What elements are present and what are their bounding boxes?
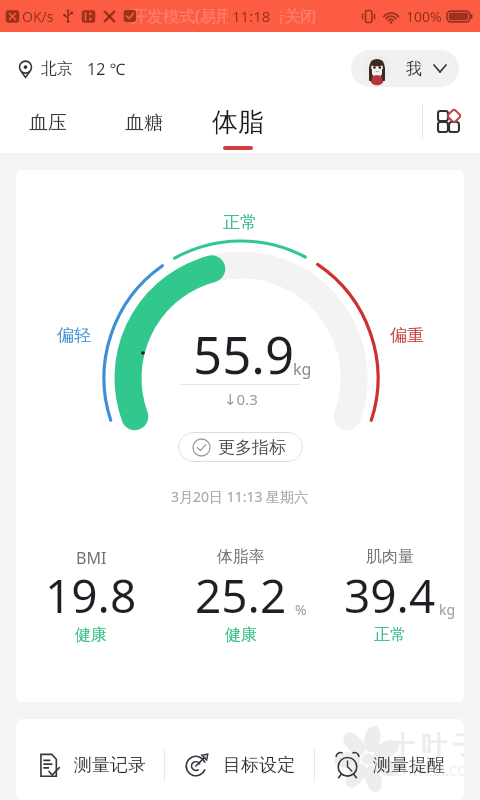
staticText: 25.2 bbox=[195, 564, 287, 627]
staticText: 更多指标 bbox=[218, 437, 286, 458]
staticText: 偏重 bbox=[390, 325, 424, 346]
staticText: 11:18 bbox=[232, 6, 271, 26]
button[interactable]: 目标设定 bbox=[165, 719, 314, 800]
staticText: 目标设定 bbox=[223, 754, 295, 777]
button[interactable]: 北京 bbox=[18, 58, 126, 80]
button[interactable]: All categories bbox=[434, 107, 462, 135]
staticText: 十 叶 子 bbox=[390, 727, 464, 761]
staticText: 血糖 bbox=[125, 111, 163, 135]
staticText: 健康 bbox=[75, 625, 107, 645]
staticText: 3月20日 11:13 星期六 bbox=[171, 487, 309, 506]
button[interactable]: 我 bbox=[351, 50, 459, 87]
staticText: 体脂 bbox=[212, 106, 264, 139]
staticText: 100% bbox=[406, 7, 442, 26]
staticText: 12 ℃ bbox=[87, 58, 126, 80]
button[interactable]: 体脂率 bbox=[166, 547, 315, 647]
staticText: 19.8 bbox=[45, 564, 137, 627]
staticText: 开发模式(易用)，点击关闭 bbox=[131, 5, 317, 27]
staticText: 健康 bbox=[225, 625, 257, 645]
staticText: BMI bbox=[76, 547, 107, 569]
staticText: ↓0.3 bbox=[224, 389, 258, 409]
staticText: OK/s bbox=[22, 7, 54, 26]
button[interactable]: 血糖 bbox=[106, 105, 182, 153]
staticText: 血压 bbox=[29, 111, 67, 135]
staticText: 肌肉量 bbox=[366, 547, 414, 567]
button[interactable]: 血压 bbox=[10, 105, 86, 153]
staticText: 偏轻 bbox=[57, 325, 91, 346]
staticText: 39.4 bbox=[344, 564, 436, 627]
staticText: kg bbox=[293, 358, 312, 380]
button[interactable]: 肌肉量 bbox=[315, 547, 464, 647]
staticText: 55.9 bbox=[193, 319, 295, 388]
staticText: 正常 bbox=[223, 212, 257, 233]
staticText: 北京 bbox=[41, 59, 73, 79]
staticText: 测量记录 bbox=[74, 754, 146, 777]
staticText: 正常 bbox=[374, 625, 406, 645]
staticText: 测量提醒 bbox=[373, 754, 445, 777]
button[interactable]: 更多指标 bbox=[178, 432, 303, 462]
button[interactable]: 测量提醒 bbox=[315, 719, 464, 800]
button[interactable]: BMI bbox=[16, 547, 166, 647]
button[interactable]: 测量记录 bbox=[16, 719, 164, 800]
staticText: ZHIYEZI.COM bbox=[394, 761, 464, 780]
staticText: % bbox=[295, 600, 307, 619]
staticText: 体脂率 bbox=[217, 547, 265, 567]
staticText: 我 bbox=[406, 59, 422, 79]
button[interactable]: 体脂 bbox=[200, 105, 276, 153]
staticText: kg bbox=[439, 600, 456, 619]
